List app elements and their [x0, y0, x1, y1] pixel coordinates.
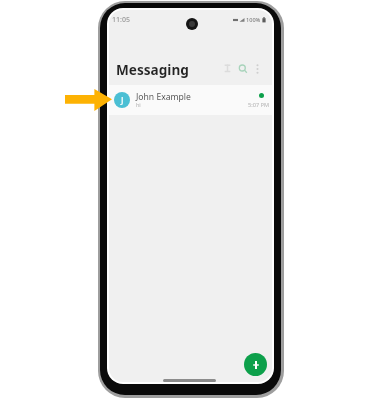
- button[interactable]: More options: [251, 62, 264, 75]
- button[interactable]: Pinned conversations: [221, 62, 234, 75]
- staticText: Messaging: [116, 60, 189, 79]
- staticText: 100%: [246, 16, 261, 24]
- staticText: J: [121, 94, 124, 106]
- button[interactable]: Search: [236, 62, 249, 75]
- button[interactable]: Start new conversation: [244, 353, 267, 376]
- staticText: 5:07 PM: [248, 101, 270, 109]
- button[interactable]: J: [109, 85, 272, 115]
- staticText: 11:05: [112, 15, 130, 25]
- staticText: hi: [136, 101, 141, 108]
- staticText: John Example: [136, 91, 191, 103]
